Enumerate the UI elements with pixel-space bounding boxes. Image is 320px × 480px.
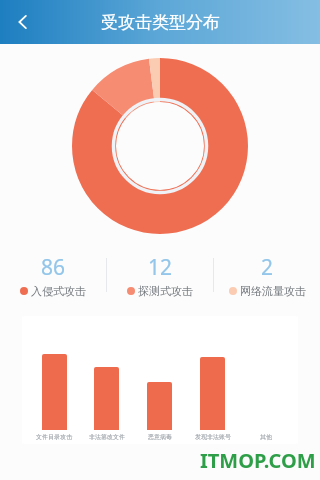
button[interactable]: 86 xyxy=(0,253,106,298)
button[interactable]: Back xyxy=(0,0,46,44)
staticText: 网络流量攻击 xyxy=(240,284,306,298)
staticText: 其他 xyxy=(260,433,272,441)
staticText: 12 xyxy=(148,253,173,282)
staticText: 2 xyxy=(261,253,274,282)
staticText: 入侵式攻击 xyxy=(31,284,86,298)
button[interactable]: 12 xyxy=(107,253,213,298)
staticText: 发现非法账号 xyxy=(195,433,231,441)
staticText: 非法篡改文件 xyxy=(89,433,125,441)
staticText: 恶意病毒 xyxy=(148,433,172,441)
staticText: 86 xyxy=(41,253,66,282)
staticText: 探测式攻击 xyxy=(138,284,193,298)
button[interactable]: 2 xyxy=(214,253,320,298)
staticText: 文件目录攻击 xyxy=(36,433,72,441)
staticText: 受攻击类型分布 xyxy=(101,12,220,33)
staticText: ITMOP.COM xyxy=(200,447,316,474)
